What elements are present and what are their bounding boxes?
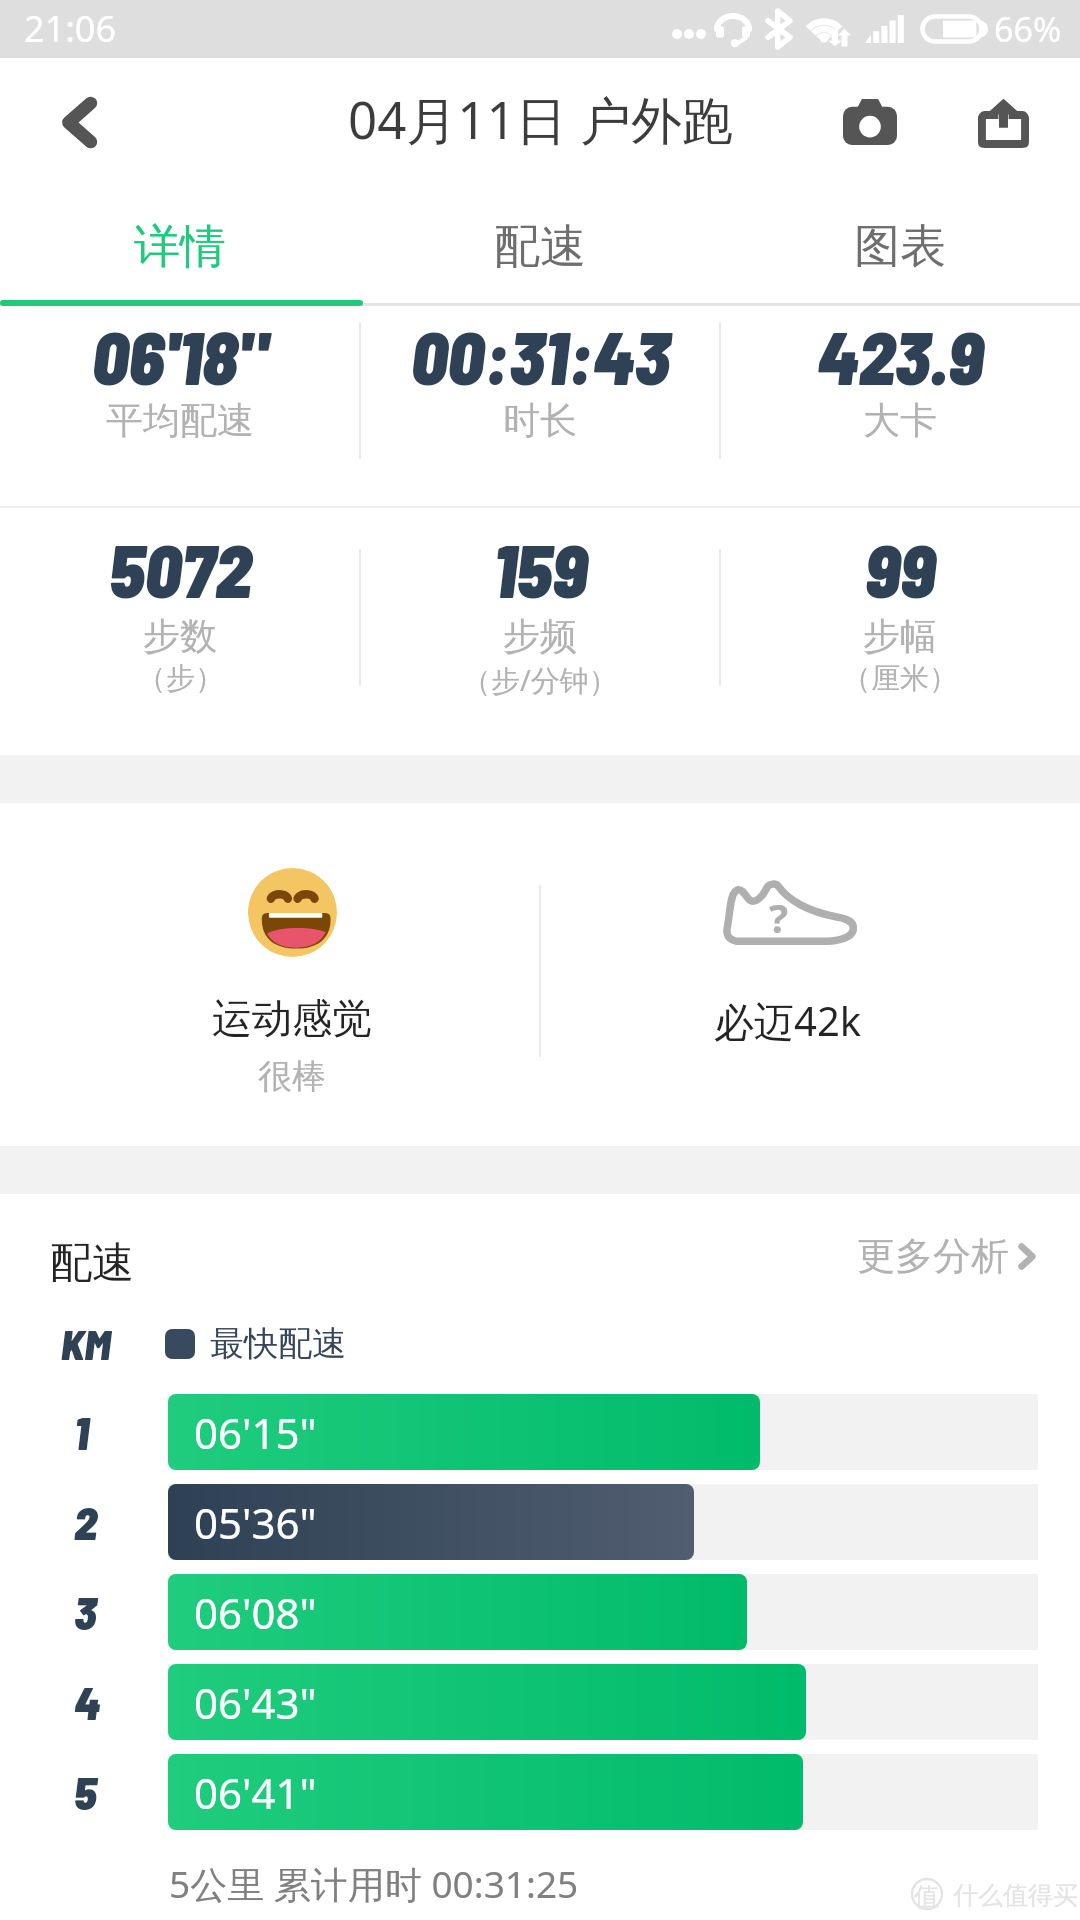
staticText: 06'15" bbox=[194, 1404, 317, 1461]
staticText: 4 bbox=[74, 1674, 101, 1729]
button[interactable]: 运动感觉 bbox=[44, 803, 540, 1146]
staticText: 5 bbox=[74, 1764, 97, 1819]
staticText: 最快配速 bbox=[210, 1322, 346, 1365]
button[interactable]: 2 bbox=[0, 1477, 1080, 1567]
staticText: 很棒 bbox=[258, 1055, 326, 1098]
staticText: KM bbox=[61, 1318, 111, 1368]
staticText: 21:06 bbox=[24, 4, 117, 53]
button[interactable]: 4 bbox=[0, 1657, 1080, 1747]
button[interactable]: 更多分析 bbox=[857, 1232, 1035, 1280]
staticText: 详情 bbox=[134, 218, 226, 276]
button[interactable]: 图表 bbox=[720, 189, 1080, 304]
staticText: 步幅 bbox=[863, 613, 937, 660]
staticText: 66% bbox=[994, 6, 1062, 52]
staticText: 5072 bbox=[109, 525, 252, 613]
button[interactable]: Camera bbox=[820, 72, 920, 172]
staticText: 1 bbox=[74, 1404, 89, 1459]
staticText: （厘米） bbox=[842, 660, 958, 697]
staticText: 06'41" bbox=[194, 1764, 317, 1821]
button[interactable]: 1 bbox=[0, 1387, 1080, 1477]
staticText: 配速 bbox=[50, 1237, 134, 1290]
staticText: 423.9 bbox=[817, 312, 984, 400]
button[interactable]: 配速 bbox=[360, 189, 720, 304]
button[interactable]: ? bbox=[540, 803, 1036, 1146]
staticText: （步） bbox=[137, 660, 224, 697]
staticText: ? bbox=[769, 890, 789, 944]
staticText: 3 bbox=[74, 1584, 97, 1639]
button[interactable]: 详情 bbox=[0, 189, 360, 304]
staticText: 必迈42k bbox=[714, 993, 862, 1048]
staticText: 00:31:43 bbox=[411, 312, 670, 400]
staticText: 06'18" bbox=[92, 312, 268, 400]
staticText: 05'36" bbox=[194, 1494, 317, 1551]
staticText: 步频 bbox=[503, 613, 577, 660]
staticText: 更多分析 bbox=[857, 1232, 1009, 1280]
staticText: （步/分钟） bbox=[462, 660, 618, 700]
staticText: 99 bbox=[865, 525, 936, 613]
staticText: 06'43" bbox=[194, 1674, 317, 1731]
staticText: 运动感觉 bbox=[212, 993, 372, 1043]
staticText: 159 bbox=[493, 525, 588, 613]
staticText: 平均配速 bbox=[106, 397, 254, 444]
staticText: 步数 bbox=[143, 613, 217, 660]
button[interactable]: Back bbox=[36, 80, 120, 164]
staticText: 大卡 bbox=[863, 397, 937, 444]
staticText: 值 bbox=[914, 1881, 939, 1912]
staticText: 2 bbox=[74, 1494, 98, 1549]
staticText: 配速 bbox=[494, 218, 586, 276]
staticText: 图表 bbox=[854, 218, 946, 276]
staticText: 时长 bbox=[503, 397, 577, 444]
button[interactable]: 3 bbox=[0, 1567, 1080, 1657]
staticText: 06'08" bbox=[194, 1584, 317, 1641]
staticText: 04月11日 户外跑 bbox=[348, 84, 733, 154]
staticText: 5公里 累计用时 00:31:25 bbox=[169, 1858, 579, 1909]
button[interactable]: Share bbox=[953, 72, 1053, 172]
button[interactable]: 5 bbox=[0, 1747, 1080, 1837]
staticText: 什么值得买 bbox=[953, 1880, 1078, 1911]
